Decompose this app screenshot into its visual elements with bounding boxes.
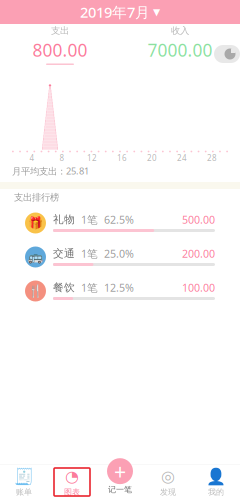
- button[interactable]: 🍴: [0, 274, 240, 308]
- staticText: 8: [59, 153, 64, 163]
- button[interactable]: ◔: [52, 468, 92, 496]
- staticText: +: [114, 457, 126, 485]
- staticText: 100.00: [182, 280, 215, 295]
- staticText: 1笔 62.5%: [75, 212, 134, 227]
- staticText: 4: [29, 153, 34, 163]
- staticText: 礼物: [53, 213, 75, 226]
- staticText: 👤: [206, 467, 226, 485]
- staticText: 收入: [171, 25, 189, 36]
- staticText: 20: [147, 153, 157, 163]
- staticText: 28: [207, 153, 217, 163]
- button[interactable]: 👤: [196, 468, 236, 496]
- staticText: 🚌: [28, 250, 43, 264]
- staticText: 7000.00: [147, 38, 212, 61]
- staticText: ▼: [153, 7, 160, 17]
- staticText: 500.00: [182, 212, 215, 227]
- staticText: 200.00: [182, 246, 215, 261]
- staticText: 月平均支出：25.81: [12, 165, 89, 177]
- staticText: ◔: [65, 467, 79, 485]
- staticText: ◎: [161, 467, 175, 485]
- button[interactable]: 2019年7月: [0, 0, 240, 24]
- staticText: 图表: [64, 487, 80, 497]
- staticText: 餐饮: [53, 281, 75, 294]
- staticText: 记一笔: [108, 485, 132, 494]
- staticText: 800.00: [32, 38, 87, 61]
- staticText: 🧾: [14, 467, 34, 485]
- staticText: 发现: [160, 487, 176, 497]
- staticText: 🍴: [28, 284, 43, 298]
- staticText: 24: [177, 153, 187, 163]
- button[interactable]: 🧾: [4, 468, 44, 496]
- button[interactable]: 🚌: [0, 240, 240, 274]
- staticText: 支出: [51, 25, 69, 36]
- staticText: 支出排行榜: [14, 192, 59, 203]
- staticText: 1笔 12.5%: [75, 280, 134, 295]
- staticText: 🎁: [28, 216, 43, 230]
- staticText: 2019年7月: [80, 2, 150, 22]
- staticText: 12: [87, 153, 97, 163]
- button[interactable]: 记一笔: [107, 457, 133, 485]
- staticText: 交通: [53, 247, 75, 260]
- staticText: 账单: [16, 487, 32, 497]
- button[interactable]: ◎: [148, 468, 188, 496]
- button[interactable]: 🎁: [0, 206, 240, 240]
- staticText: 我的: [208, 487, 224, 497]
- button[interactable]: 切换图表样式: [214, 45, 240, 63]
- staticText: 1笔 25.0%: [75, 246, 134, 261]
- staticText: 16: [117, 153, 127, 163]
